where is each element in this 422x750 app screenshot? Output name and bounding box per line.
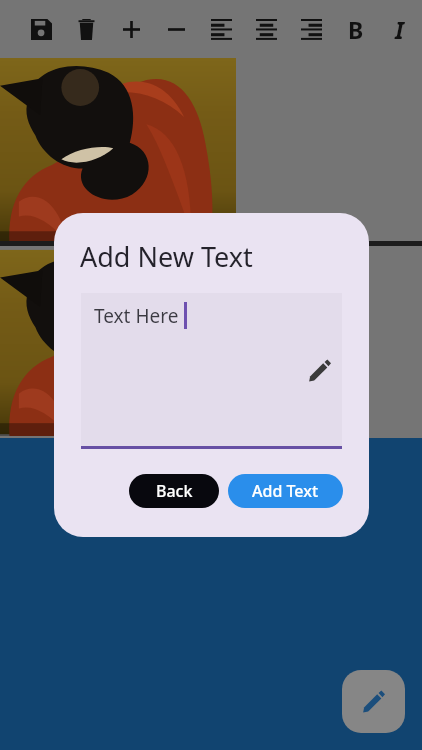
button[interactable]: Align center bbox=[244, 0, 288, 58]
button[interactable]: Edit text bbox=[342, 670, 405, 733]
button[interactable]: Align left bbox=[199, 0, 243, 58]
button[interactable]: Increase size bbox=[109, 0, 153, 58]
staticText: Text Here bbox=[94, 303, 179, 329]
button[interactable]: I bbox=[377, 0, 421, 58]
button[interactable]: Save bbox=[19, 0, 63, 58]
staticText: B bbox=[348, 14, 364, 45]
button[interactable]: B bbox=[334, 0, 378, 58]
button[interactable]: Decrease size bbox=[154, 0, 198, 58]
staticText: I bbox=[395, 14, 404, 45]
staticText: Add Text bbox=[252, 480, 319, 502]
staticText: Back bbox=[156, 480, 193, 502]
button[interactable]: Add Text bbox=[228, 474, 343, 508]
button[interactable]: Align right bbox=[289, 0, 333, 58]
button[interactable] bbox=[81, 293, 342, 446]
button[interactable]: Back bbox=[129, 474, 219, 508]
staticText: Add New Text bbox=[80, 238, 253, 275]
button[interactable]: Delete bbox=[64, 0, 108, 58]
